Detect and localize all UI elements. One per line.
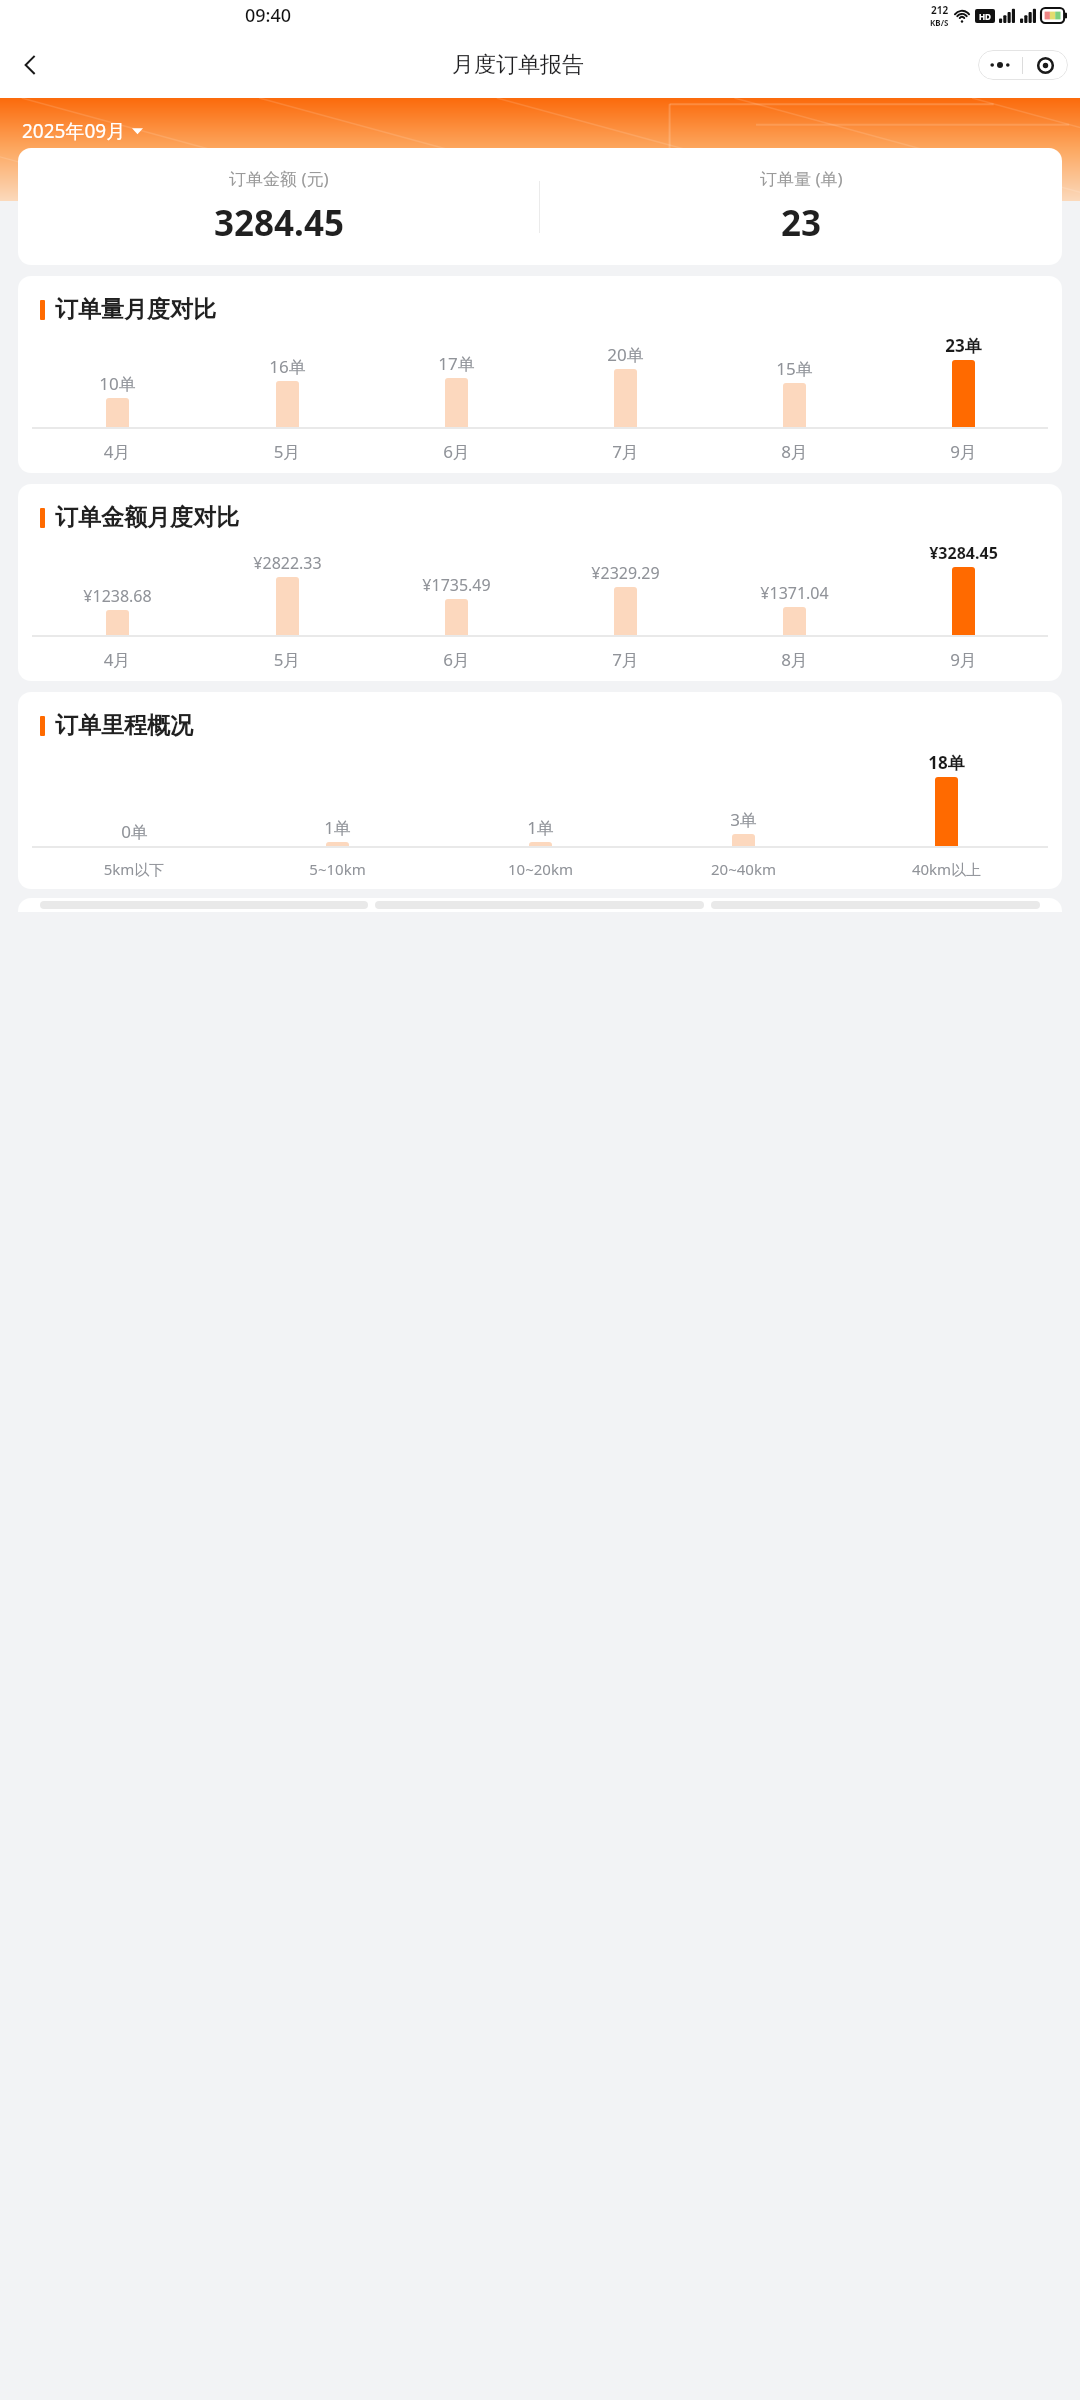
staticText: 9月 (879, 440, 1048, 463)
staticText: 212 (931, 3, 949, 17)
staticText: 6月 (372, 648, 541, 671)
staticText: 6月 (372, 440, 541, 463)
button[interactable]: 订单里程概况 (18, 692, 1062, 889)
staticText: 订单金额 (元) (229, 167, 329, 190)
staticText: 月度订单报告 (452, 51, 584, 79)
staticText: ¥1371.04 (760, 582, 829, 604)
staticText: 7月 (541, 440, 710, 463)
staticText: 10~20km (439, 859, 642, 879)
button[interactable]: Back (8, 43, 52, 87)
staticText: 1单 (527, 816, 554, 839)
staticText: 18单 (928, 751, 965, 774)
staticText: 16单 (269, 355, 306, 378)
staticText: 4月 (32, 440, 202, 463)
staticText: 17单 (438, 352, 475, 375)
button[interactable]: 订单量月度对比 (18, 276, 1062, 473)
staticText: 10单 (99, 372, 136, 395)
staticText: 40km以上 (845, 859, 1048, 879)
staticText: 5月 (202, 648, 372, 671)
staticText: 5km以下 (32, 859, 236, 879)
staticText: KB/S (930, 17, 949, 28)
staticText: 8月 (710, 440, 879, 463)
staticText: 8月 (710, 648, 879, 671)
staticText: 3单 (730, 808, 757, 831)
staticText: ¥2822.33 (253, 552, 322, 574)
staticText: ¥2329.29 (591, 562, 660, 584)
button[interactable]: Target (1023, 50, 1068, 80)
staticText: 3284.45 (214, 199, 344, 247)
staticText: 23 (781, 199, 822, 247)
staticText: 1单 (324, 816, 351, 839)
button[interactable]: 2025年09月 (22, 118, 143, 144)
staticText: 5~10km (236, 859, 439, 879)
button[interactable]: More (978, 50, 1022, 80)
staticText: 5月 (202, 440, 372, 463)
staticText: 订单里程概况 (55, 711, 193, 740)
staticText: 0单 (121, 820, 148, 843)
staticText: 20~40km (642, 859, 845, 879)
staticText: 23单 (945, 334, 982, 357)
staticText: 订单金额月度对比 (55, 503, 239, 532)
staticText: 2025年09月 (22, 118, 126, 144)
staticText: ¥3284.45 (929, 542, 998, 564)
staticText: 20单 (607, 343, 644, 366)
staticText: 9月 (879, 648, 1048, 671)
staticText: 09:40 (245, 3, 292, 28)
staticText: 15单 (776, 357, 813, 380)
button[interactable]: 订单金额月度对比 (18, 484, 1062, 681)
staticText: HD (979, 11, 991, 22)
staticText: 订单量 (单) (760, 167, 843, 190)
staticText: 7月 (541, 648, 710, 671)
staticText: 4月 (32, 648, 202, 671)
staticText: ¥1735.49 (422, 574, 491, 596)
staticText: 订单量月度对比 (55, 295, 216, 324)
staticText: ¥1238.68 (83, 585, 152, 607)
